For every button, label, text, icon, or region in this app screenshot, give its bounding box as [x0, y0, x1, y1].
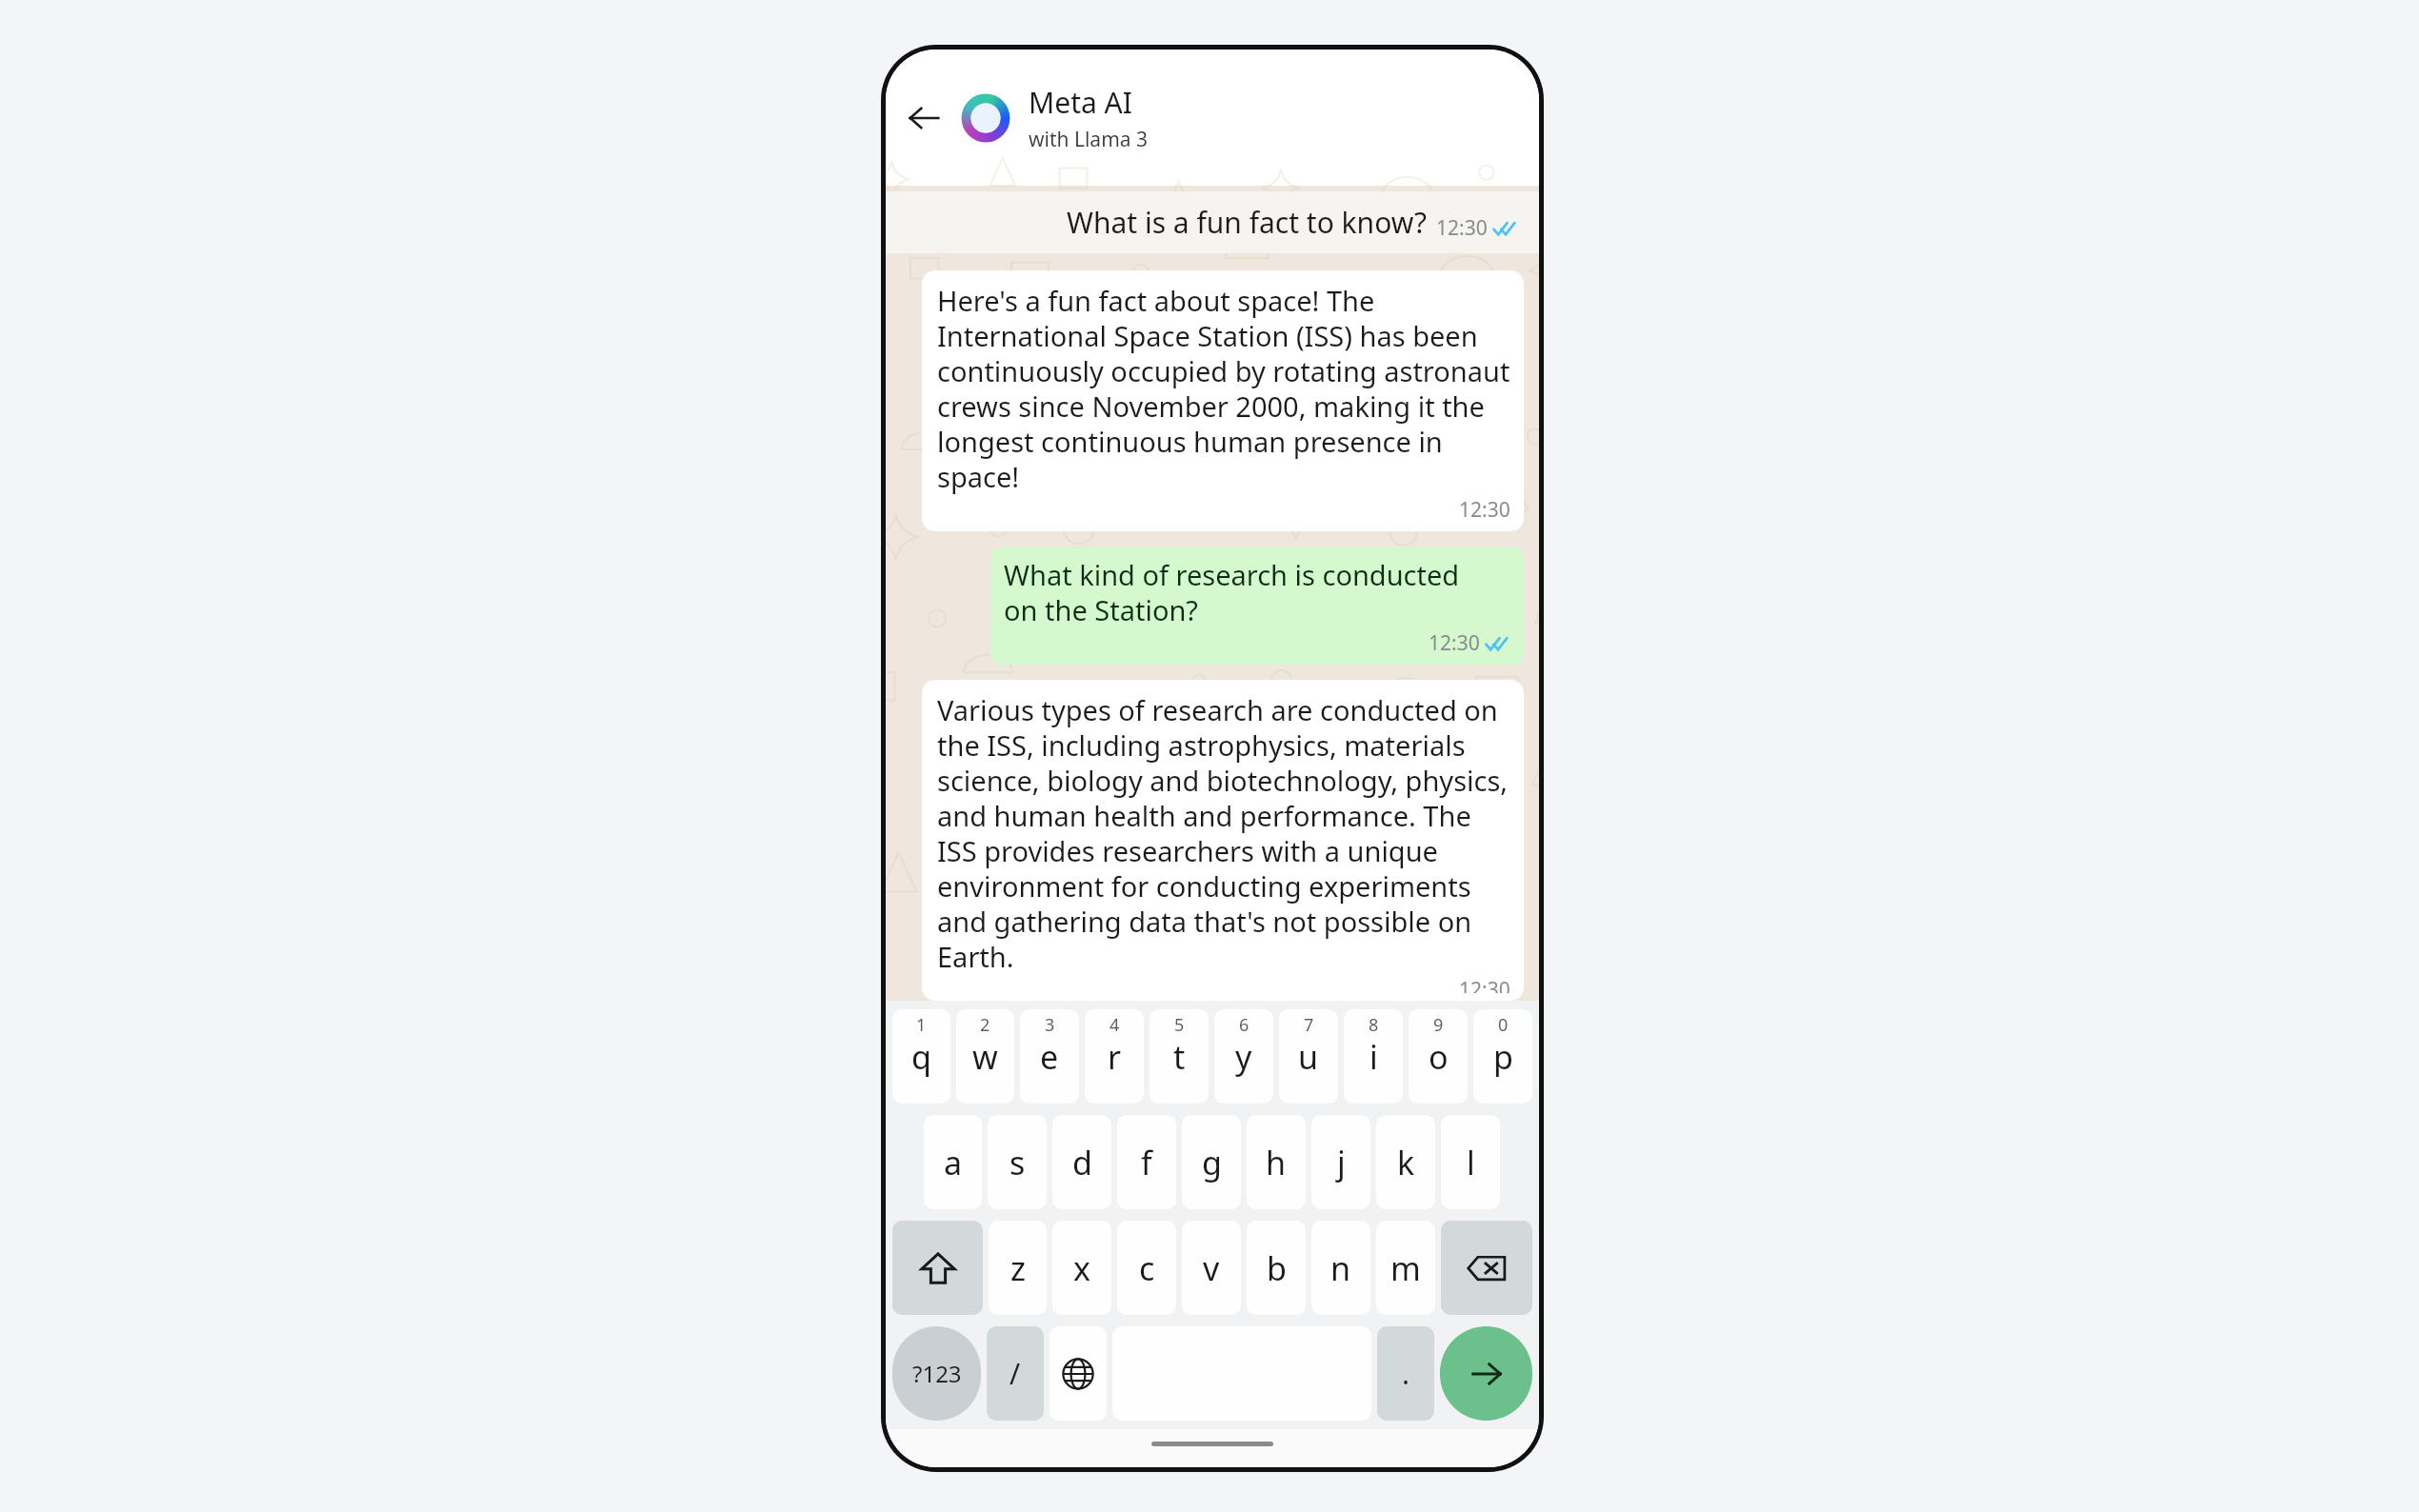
staticText: u: [1298, 1035, 1319, 1079]
button[interactable]: Shift: [892, 1221, 983, 1315]
staticText: 4: [1110, 1013, 1120, 1037]
staticText: with Llama 3: [1029, 126, 1149, 153]
staticText: .: [1402, 1354, 1410, 1393]
staticText: 5: [1174, 1013, 1185, 1037]
staticText: k: [1397, 1141, 1415, 1184]
staticText: d: [1072, 1141, 1092, 1184]
staticText: q: [911, 1035, 931, 1079]
button[interactable]: z: [989, 1221, 1047, 1315]
staticText: What kind of research is conducted on th…: [1004, 556, 1460, 629]
staticText: 2: [980, 1013, 990, 1037]
staticText: z: [1010, 1246, 1026, 1290]
button[interactable]: a: [924, 1115, 982, 1209]
button[interactable]: What kind of research is conducted on th…: [990, 547, 1524, 665]
staticText: y: [1235, 1035, 1252, 1079]
staticText: h: [1266, 1141, 1287, 1184]
button[interactable]: n: [1311, 1221, 1370, 1315]
staticText: Various types of research are conducted …: [937, 691, 1510, 976]
button[interactable]: o: [1409, 1009, 1468, 1104]
button[interactable]: i: [1344, 1009, 1403, 1104]
button[interactable]: .: [1377, 1326, 1434, 1421]
staticText: 8: [1369, 1013, 1379, 1037]
button[interactable]: /: [987, 1326, 1044, 1421]
staticText: c: [1139, 1246, 1155, 1290]
button[interactable]: ?123: [892, 1326, 981, 1421]
staticText: 6: [1239, 1013, 1249, 1037]
button[interactable]: Various types of research are conducted …: [922, 680, 1524, 1001]
button[interactable]: What is a fun fact to know?: [886, 191, 1539, 253]
button[interactable]: k: [1376, 1115, 1435, 1209]
button[interactable]: f: [1117, 1115, 1176, 1209]
button[interactable]: Language: [1050, 1326, 1107, 1421]
staticText: 9: [1433, 1013, 1444, 1037]
button[interactable]: j: [1311, 1115, 1370, 1209]
staticText: Here's a fun fact about space! The Inter…: [937, 282, 1510, 496]
button[interactable]: w: [956, 1009, 1014, 1104]
staticText: l: [1467, 1141, 1475, 1184]
staticText: 12:30: [1459, 976, 1510, 993]
button[interactable]: Send: [1440, 1326, 1532, 1421]
staticText: 0: [1498, 1013, 1509, 1037]
button[interactable]: l: [1441, 1115, 1500, 1209]
button[interactable]: q: [892, 1009, 950, 1104]
staticText: b: [1267, 1246, 1287, 1290]
staticText: i: [1369, 1035, 1378, 1079]
staticText: r: [1108, 1035, 1122, 1079]
staticText: v: [1203, 1246, 1220, 1290]
staticText: a: [944, 1141, 963, 1184]
staticText: s: [1010, 1141, 1026, 1184]
button[interactable]: r: [1085, 1009, 1144, 1104]
staticText: Meta AI: [1029, 83, 1132, 122]
staticText: 12:30: [1459, 496, 1510, 524]
staticText: 12:30: [1436, 214, 1488, 242]
button[interactable]: y: [1214, 1009, 1273, 1104]
button[interactable]: Here's a fun fact about space! The Inter…: [922, 270, 1524, 531]
staticText: j: [1337, 1141, 1346, 1184]
button[interactable]: h: [1247, 1115, 1306, 1209]
staticText: m: [1390, 1246, 1421, 1290]
staticText: 12:30: [1429, 629, 1480, 657]
button[interactable]: v: [1182, 1221, 1241, 1315]
staticText: 7: [1304, 1013, 1314, 1037]
staticText: o: [1429, 1035, 1449, 1079]
button[interactable]: p: [1473, 1009, 1532, 1104]
staticText: x: [1073, 1246, 1090, 1290]
staticText: ?123: [912, 1358, 962, 1389]
staticText: 1: [916, 1013, 927, 1037]
button[interactable]: s: [988, 1115, 1047, 1209]
button[interactable]: Backspace: [1441, 1221, 1532, 1315]
button[interactable]: x: [1052, 1221, 1111, 1315]
button[interactable]: d: [1052, 1115, 1111, 1209]
button[interactable]: g: [1182, 1115, 1241, 1209]
staticText: p: [1493, 1035, 1513, 1079]
staticText: /: [1010, 1354, 1021, 1393]
button[interactable]: Back: [899, 93, 949, 143]
button[interactable]: Meta AI: [1029, 83, 1524, 153]
staticText: 3: [1045, 1013, 1055, 1037]
button[interactable]: m: [1376, 1221, 1435, 1315]
staticText: f: [1141, 1141, 1152, 1184]
button[interactable]: t: [1150, 1009, 1209, 1104]
staticText: What is a fun fact to know?: [1067, 203, 1427, 242]
staticText: e: [1040, 1035, 1059, 1079]
staticText: t: [1173, 1035, 1186, 1079]
button[interactable]: b: [1247, 1221, 1306, 1315]
button[interactable]: c: [1117, 1221, 1176, 1315]
button[interactable]: u: [1279, 1009, 1338, 1104]
staticText: g: [1202, 1141, 1222, 1184]
staticText: w: [972, 1035, 998, 1079]
staticText: n: [1330, 1246, 1351, 1290]
button[interactable]: e: [1020, 1009, 1079, 1104]
